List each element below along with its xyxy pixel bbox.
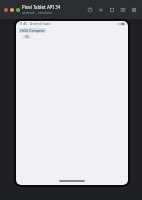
button[interactable]: Maximise window bbox=[16, 8, 20, 12]
button[interactable]: Screenshot bbox=[119, 6, 127, 14]
button[interactable]: Close window bbox=[4, 8, 8, 12]
button[interactable]: Power bbox=[86, 6, 94, 14]
staticText: 11:45 bbox=[19, 22, 28, 26]
button[interactable]: Rotate bbox=[108, 6, 116, 14]
staticText: OK bbox=[25, 35, 29, 39]
button[interactable]: Hello Compose bbox=[20, 28, 45, 33]
button[interactable]: More options bbox=[130, 6, 138, 14]
button[interactable]: Volume bbox=[97, 6, 105, 14]
button[interactable]: Minimise window bbox=[10, 8, 14, 12]
button[interactable]: OK bbox=[22, 35, 31, 39]
staticText: Hello Compose bbox=[20, 28, 45, 33]
staticText: android – emulator bbox=[22, 10, 53, 15]
staticText: Pixel Tablet API 34 bbox=[22, 4, 61, 10]
staticText: Android Studio bbox=[30, 22, 52, 26]
button[interactable]: Home gesture bbox=[59, 180, 85, 182]
